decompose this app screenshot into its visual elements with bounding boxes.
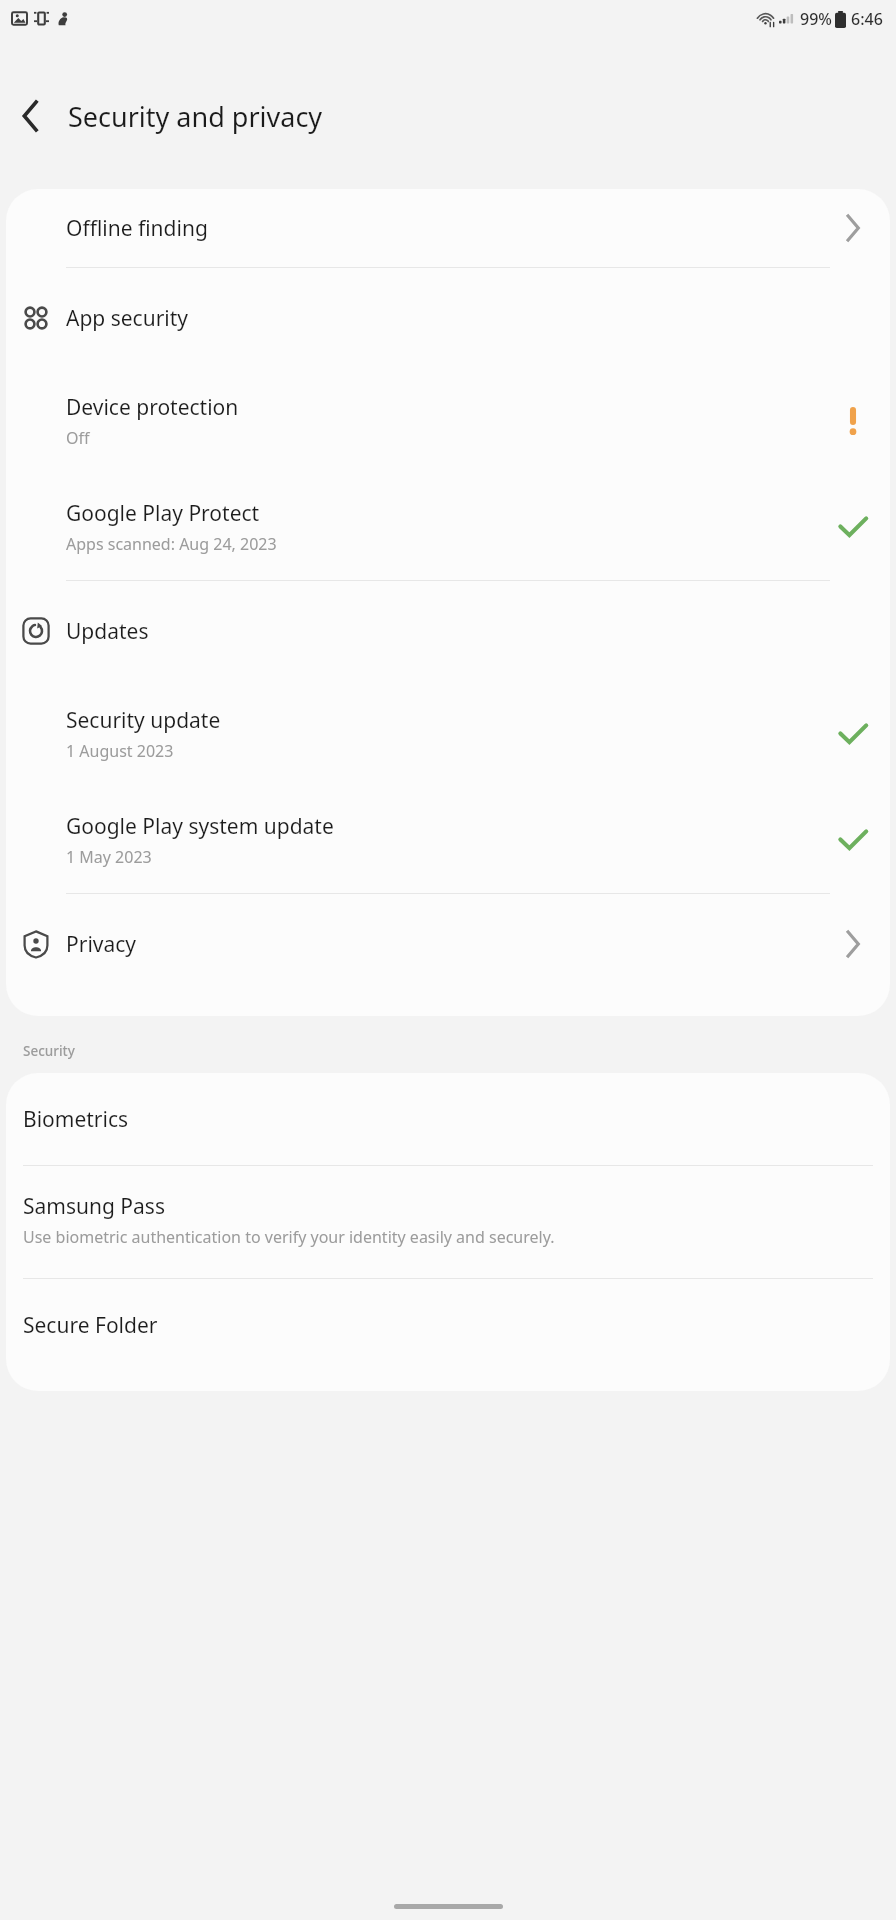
staticText: Google Play Protect bbox=[66, 499, 260, 528]
button[interactable]: Device protection bbox=[6, 368, 890, 474]
staticText: App security bbox=[66, 304, 189, 333]
button[interactable]: Back bbox=[0, 85, 62, 147]
button[interactable]: Samsung Pass bbox=[6, 1166, 890, 1278]
staticText: Security and privacy bbox=[68, 98, 323, 135]
staticText: Offline finding bbox=[66, 214, 208, 243]
staticText: Biometrics bbox=[23, 1105, 129, 1134]
staticText: Security update bbox=[66, 706, 221, 735]
button[interactable]: Google Play system update bbox=[6, 787, 890, 893]
button[interactable]: Biometrics bbox=[6, 1073, 890, 1165]
staticText: Updates bbox=[66, 617, 149, 646]
staticText: Use biometric authentication to verify y… bbox=[23, 1226, 555, 1248]
button[interactable]: Privacy bbox=[6, 894, 890, 994]
staticText: Google Play system update bbox=[66, 812, 334, 841]
button[interactable]: Updates bbox=[6, 581, 890, 681]
staticText: Off bbox=[66, 427, 90, 449]
button[interactable]: App security bbox=[6, 268, 890, 368]
staticText: 1 May 2023 bbox=[66, 846, 152, 868]
staticText: Privacy bbox=[66, 930, 137, 959]
staticText: 1 August 2023 bbox=[66, 740, 174, 762]
button[interactable]: Security update bbox=[6, 681, 890, 787]
staticText: 6:46 bbox=[851, 8, 883, 30]
staticText: Device protection bbox=[66, 393, 239, 422]
staticText: Security bbox=[23, 1042, 75, 1060]
button[interactable]: Offline finding bbox=[6, 189, 890, 267]
staticText: Secure Folder bbox=[23, 1311, 158, 1340]
button[interactable]: Google Play Protect bbox=[6, 474, 890, 580]
staticText: 99% bbox=[800, 8, 832, 30]
staticText: Samsung Pass bbox=[23, 1192, 165, 1221]
staticText: Apps scanned: Aug 24, 2023 bbox=[66, 533, 277, 555]
button[interactable]: Secure Folder bbox=[6, 1279, 890, 1371]
